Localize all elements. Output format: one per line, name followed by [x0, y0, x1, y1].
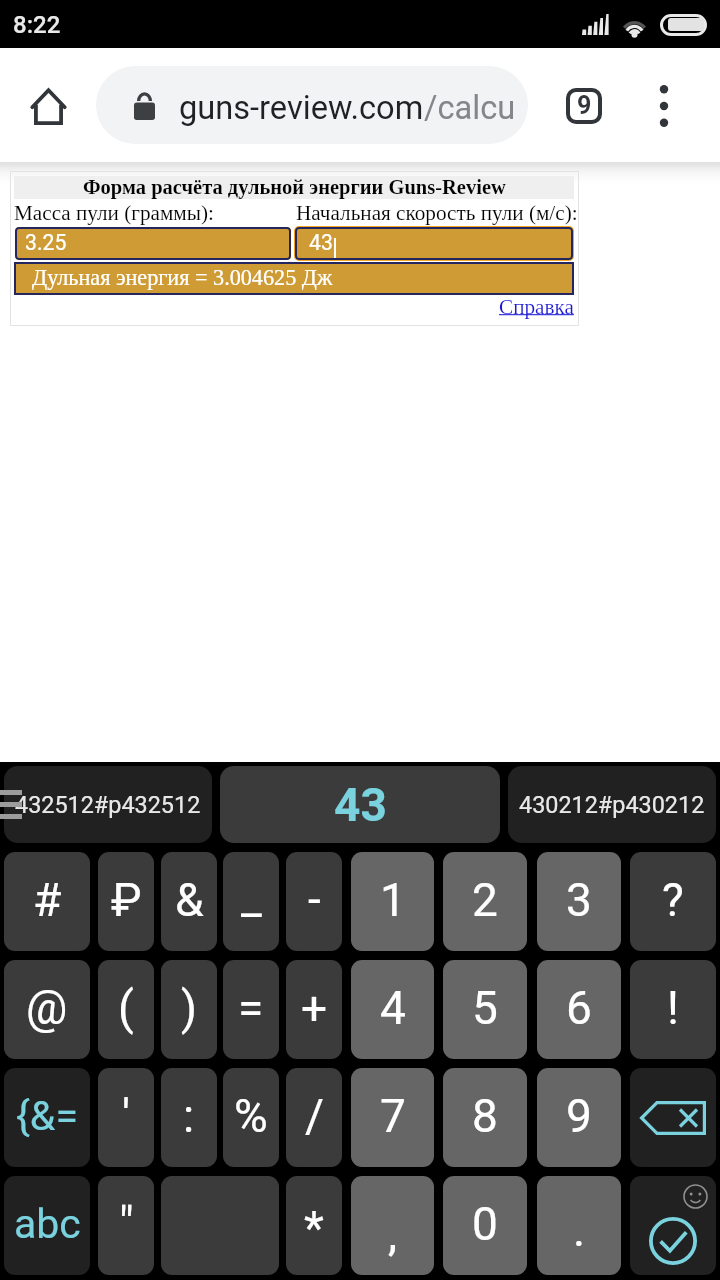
button[interactable]: 3 — [537, 852, 621, 951]
staticText: Дульная энергия = 3.004625 Дж — [32, 265, 333, 290]
button[interactable]: Enter — [630, 1176, 716, 1275]
staticText: 432512#p432512 — [15, 791, 201, 818]
staticText: 43 — [334, 778, 387, 832]
staticText: 3 — [566, 873, 592, 927]
staticText: 9 — [577, 91, 592, 120]
staticText: 8 — [472, 1089, 498, 1143]
staticText: 43 — [309, 230, 333, 255]
button[interactable]: . — [537, 1176, 621, 1275]
staticText: 2 — [472, 873, 498, 927]
staticText: 4 — [380, 981, 406, 1035]
button[interactable]: guns-review.com — [96, 66, 528, 144]
staticText: , — [388, 1207, 398, 1261]
staticText: : — [183, 1089, 195, 1143]
button[interactable]: % — [223, 1068, 279, 1167]
button[interactable]: abc — [4, 1176, 90, 1275]
staticText: 7 — [380, 1089, 406, 1143]
button[interactable]: - — [286, 852, 342, 951]
button[interactable]: / — [286, 1068, 342, 1167]
button[interactable]: ( — [98, 960, 154, 1059]
button[interactable]: Home — [12, 70, 84, 142]
button[interactable]: 43 — [295, 227, 573, 260]
staticText: guns-review.com — [179, 89, 424, 127]
button[interactable]: * — [286, 1176, 342, 1275]
staticText: . — [573, 1203, 586, 1257]
staticText: # — [33, 873, 62, 927]
staticText: 3.25 — [25, 230, 67, 255]
staticText: ) — [181, 981, 198, 1035]
button[interactable]: # — [4, 852, 90, 951]
button[interactable]: Справка — [499, 295, 574, 318]
button[interactable]: + — [286, 960, 342, 1059]
button[interactable] — [161, 1176, 279, 1275]
staticText: _ — [241, 871, 262, 925]
staticText: 9 — [566, 1089, 592, 1143]
staticText: ( — [118, 981, 134, 1035]
staticText: /calcu — [424, 89, 516, 127]
button[interactable]: 3.25 — [15, 227, 291, 260]
button[interactable]: ) — [161, 960, 217, 1059]
button[interactable]: 2 — [443, 852, 527, 951]
staticText: Форма расчёта дульной энергии Guns-Revie… — [83, 176, 506, 199]
button[interactable]: Backspace — [630, 1068, 716, 1167]
staticText: 1 — [380, 873, 406, 927]
button[interactable]: {&= — [4, 1068, 90, 1167]
staticText: 8:22 — [13, 11, 61, 39]
button[interactable]: ! — [630, 960, 716, 1059]
button[interactable]: " — [98, 1176, 154, 1275]
button[interactable]: 5 — [443, 960, 527, 1059]
button[interactable]: @ — [4, 960, 90, 1059]
button[interactable]: 1 — [351, 852, 434, 951]
staticText: & — [175, 873, 204, 927]
button[interactable]: Tabs — [548, 70, 620, 142]
button[interactable]: 432512#p432512 — [4, 766, 212, 843]
button[interactable]: : — [161, 1068, 217, 1167]
staticText: Масса пули (граммы): — [14, 201, 214, 224]
button[interactable]: ? — [630, 852, 716, 951]
button[interactable]: 7 — [351, 1068, 434, 1167]
staticText: - — [308, 872, 321, 926]
button[interactable]: 8 — [443, 1068, 527, 1167]
staticText: " — [119, 1197, 134, 1251]
staticText: {&= — [16, 1092, 78, 1140]
button[interactable]: More options — [628, 70, 700, 142]
button[interactable]: ₽ — [98, 852, 154, 951]
button[interactable]: ' — [98, 1068, 154, 1167]
staticText: Начальная скорость пули (м/с): — [296, 201, 578, 224]
staticText: = — [238, 981, 264, 1035]
staticText: 6 — [566, 981, 592, 1035]
button[interactable]: 0 — [443, 1176, 527, 1275]
button[interactable]: 4 — [351, 960, 434, 1059]
button[interactable]: 6 — [537, 960, 621, 1059]
staticText: + — [301, 981, 328, 1035]
staticText: * — [304, 1201, 324, 1255]
button[interactable]: 43 — [220, 766, 500, 843]
button[interactable]: & — [161, 852, 217, 951]
staticText: ? — [662, 873, 684, 927]
button[interactable]: = — [223, 960, 279, 1059]
button[interactable]: 430212#p430212 — [508, 766, 716, 843]
staticText: % — [234, 1089, 268, 1143]
staticText: @ — [26, 981, 68, 1035]
staticText: / — [305, 1089, 324, 1143]
staticText: 5 — [472, 981, 498, 1035]
staticText: ' — [122, 1089, 131, 1143]
staticText: ! — [667, 981, 679, 1035]
staticText: abc — [14, 1200, 81, 1248]
button[interactable]: _ — [223, 852, 279, 951]
staticText: 0 — [472, 1197, 498, 1251]
button[interactable]: , — [351, 1176, 434, 1275]
staticText: ₽ — [111, 873, 142, 927]
staticText: 430212#p430212 — [519, 791, 705, 818]
button[interactable]: 9 — [537, 1068, 621, 1167]
